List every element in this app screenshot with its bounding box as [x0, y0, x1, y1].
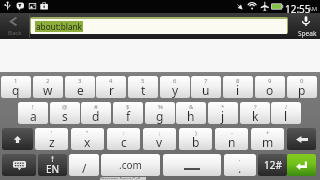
- button[interactable]: a: [18, 102, 48, 124]
- staticText: -: [231, 129, 233, 137]
- button[interactable]: s: [50, 102, 80, 124]
- staticText: /: [82, 160, 87, 176]
- button[interactable]: f: [113, 102, 143, 124]
- button[interactable]: r: [96, 76, 126, 98]
- button[interactable]: /: [69, 154, 99, 176]
- staticText: ": [86, 129, 89, 137]
- button[interactable]: h: [176, 102, 206, 124]
- button[interactable]: q: [1, 76, 31, 98]
- button[interactable]: x: [71, 128, 104, 150]
- staticText: 6: [173, 77, 177, 85]
- staticText: a: [30, 108, 37, 124]
- staticText: 1: [14, 77, 18, 85]
- staticText: .: [238, 160, 242, 176]
- button[interactable]: v: [143, 128, 176, 150]
- staticText: 12:55: [285, 2, 311, 15]
- staticText: %: [158, 103, 163, 111]
- staticText: .com: [119, 158, 142, 172]
- staticText: s: [62, 108, 68, 124]
- staticText: 9: [268, 77, 272, 85]
- staticText: :: [123, 129, 125, 137]
- button[interactable]: j: [208, 102, 238, 124]
- button[interactable]: y: [160, 76, 190, 98]
- staticText: f: [126, 108, 131, 124]
- staticText: 3: [78, 77, 82, 85]
- staticText: Previews Input Call Speed: [100, 176, 146, 179]
- staticText: *: [221, 103, 225, 111]
- staticText: c: [121, 134, 127, 150]
- staticText: d: [92, 108, 100, 124]
- button[interactable]: .: [224, 154, 256, 176]
- button[interactable]: Space: [163, 154, 221, 176]
- staticText: +: [266, 129, 270, 137]
- staticText: b: [192, 134, 200, 150]
- staticText: ?: [254, 103, 257, 111]
- staticText: ,: [239, 155, 241, 163]
- staticText: h: [187, 108, 195, 124]
- staticText: i: [236, 82, 240, 98]
- staticText: Speak: [298, 29, 317, 38]
- button[interactable]: p: [287, 76, 317, 98]
- button[interactable]: Speak: [288, 13, 320, 39]
- staticText: @: [62, 103, 68, 111]
- button[interactable]: b: [179, 128, 212, 150]
- staticText: 7: [204, 77, 208, 85]
- button[interactable]: z: [35, 128, 68, 150]
- staticText: ;: [159, 129, 161, 137]
- staticText: l: [284, 108, 288, 124]
- button[interactable]: Language EN: [38, 154, 67, 176]
- staticText: z: [49, 134, 55, 150]
- staticText: e: [77, 82, 84, 98]
- staticText: 0: [300, 77, 304, 85]
- staticText: x: [84, 134, 91, 150]
- staticText: 12#: [264, 158, 282, 172]
- button[interactable]: d: [81, 102, 111, 124]
- staticText: $: [126, 103, 130, 111]
- staticText: r: [109, 82, 114, 98]
- button[interactable]: Enter: [287, 154, 316, 176]
- button[interactable]: w: [33, 76, 63, 98]
- button[interactable]: k: [240, 102, 270, 124]
- staticText: y: [172, 82, 179, 98]
- staticText: 4: [109, 77, 113, 85]
- staticText: !: [32, 103, 34, 111]
- button[interactable]: Back: [0, 13, 28, 39]
- staticText: t: [141, 82, 146, 98]
- staticText: o: [266, 82, 274, 98]
- staticText: /: [285, 103, 288, 111]
- button[interactable]: c: [107, 128, 140, 150]
- button[interactable]: Shift: [2, 128, 33, 150]
- staticText: g: [156, 108, 164, 124]
- staticText: w: [43, 82, 53, 98]
- staticText: Back: [8, 29, 22, 37]
- button[interactable]: i: [223, 76, 253, 98]
- staticText: k: [252, 108, 259, 124]
- button[interactable]: .com: [101, 154, 160, 176]
- button[interactable]: about:blank: [30, 17, 288, 34]
- staticText: 8: [236, 77, 240, 85]
- staticText: about:blank: [36, 21, 82, 32]
- staticText: p: [298, 82, 306, 98]
- button[interactable]: Keyboard settings: [2, 154, 36, 176]
- button[interactable]: n: [215, 128, 248, 150]
- staticText: AM: [308, 5, 318, 13]
- staticText: 2: [46, 77, 50, 85]
- staticText: m: [262, 134, 274, 150]
- button[interactable]: o: [255, 76, 285, 98]
- button[interactable]: u: [191, 76, 221, 98]
- staticText: j: [221, 108, 225, 124]
- staticText: #: [94, 103, 98, 111]
- button[interactable]: Symbols: [258, 154, 287, 176]
- staticText: v: [156, 134, 163, 150]
- button[interactable]: Backspace: [287, 128, 316, 150]
- button[interactable]: g: [145, 102, 175, 124]
- staticText: ': [51, 129, 53, 137]
- staticText: EN: [46, 162, 60, 176]
- button[interactable]: m: [251, 128, 284, 150]
- button[interactable]: e: [65, 76, 95, 98]
- staticText: q: [12, 82, 20, 98]
- button[interactable]: t: [128, 76, 158, 98]
- staticText: n: [228, 134, 236, 150]
- staticText: u: [202, 82, 210, 98]
- button[interactable]: l: [271, 102, 301, 124]
